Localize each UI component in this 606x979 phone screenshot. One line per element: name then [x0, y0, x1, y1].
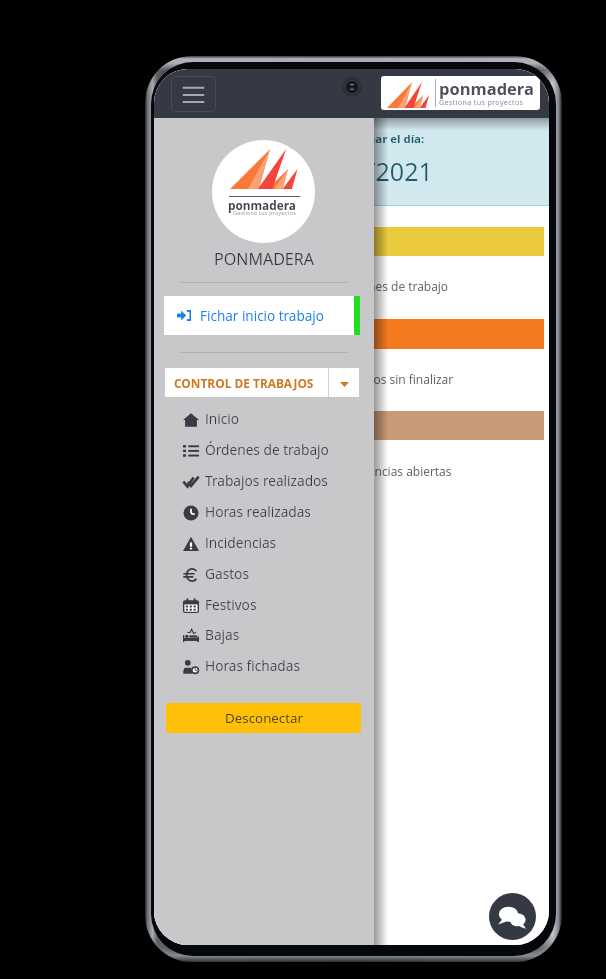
staticText: Fichar inicio trabajo — [200, 306, 324, 325]
button[interactable]: Open chat — [489, 893, 536, 940]
staticText: Desconectar — [225, 709, 303, 727]
staticText: Incidencias — [205, 533, 277, 552]
button[interactable]: Horas realizadas — [154, 497, 374, 528]
staticText: Horas realizadas — [205, 502, 311, 521]
button[interactable]: Ponmadera home — [381, 76, 540, 110]
staticText: Órdenes de trabajo — [340, 278, 449, 294]
button[interactable]: Bajas — [154, 620, 374, 651]
staticText: Gastos — [205, 564, 249, 583]
staticText: Tienes que fichar el día: — [290, 131, 425, 147]
button[interactable]: Órdenes de trabajo — [154, 435, 374, 466]
staticText: Órdenes de trabajo — [205, 440, 329, 459]
staticText: Gestiona tus proyectos — [439, 97, 524, 107]
staticText: Festivos — [205, 595, 257, 614]
button[interactable]: Desconectar — [166, 703, 361, 733]
staticText: PONMADERA — [154, 248, 374, 270]
staticText: Bajas — [205, 625, 240, 644]
staticText: ponmadera — [228, 197, 296, 213]
button[interactable]: Fichar inicio trabajo — [164, 296, 354, 335]
staticText: Inicio — [205, 409, 240, 428]
button[interactable]: Horas fichadas — [154, 651, 374, 682]
staticText: Trabajos sin finalizar — [339, 371, 454, 387]
staticText: Gestiona tus proyectos — [233, 209, 297, 216]
button[interactable]: Festivos — [154, 590, 374, 621]
button[interactable]: Incidencias — [154, 528, 374, 559]
staticText: CONTROL DE TRABAJOS — [174, 375, 328, 391]
staticText: Horas fichadas — [205, 656, 300, 675]
staticText: 07/09/2021 — [300, 154, 433, 188]
staticText: Incidencias abiertas — [341, 463, 452, 479]
button[interactable]: Gastos — [154, 559, 374, 590]
button[interactable]: CONTROL DE TRABAJOS — [165, 368, 359, 397]
staticText: ponmadera — [439, 77, 534, 99]
button[interactable]: Trabajos realizados — [154, 466, 374, 497]
staticText: Trabajos realizados — [205, 471, 328, 490]
button[interactable]: Inicio — [154, 404, 374, 435]
button[interactable]: Open navigation menu — [171, 76, 216, 112]
